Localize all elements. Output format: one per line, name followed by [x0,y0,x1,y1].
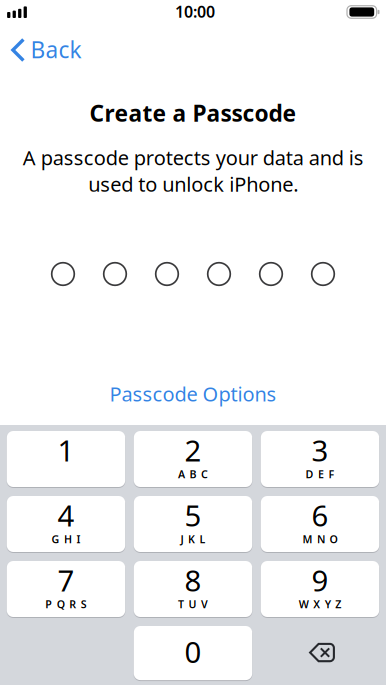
staticText: 4 [57,495,74,534]
staticText: MNO [302,532,337,546]
staticText: 0 [184,632,201,671]
button[interactable]: 4 [7,496,125,552]
staticText: DEF [305,467,334,481]
staticText: GHI [51,532,80,546]
button[interactable]: 9 [261,561,379,617]
staticText: 3 [311,430,328,469]
staticText: TUV [178,597,208,611]
button[interactable]: Delete [261,626,379,680]
button[interactable]: 0 [134,626,252,680]
staticText: 9 [311,560,328,599]
staticText: JKL [180,532,205,546]
staticText: 8 [184,560,201,599]
button[interactable]: 1 [7,431,125,487]
staticText: 5 [184,495,201,534]
button[interactable]: 6 [261,496,379,552]
staticText: Passcode Options [109,380,276,407]
staticText: Back [30,34,81,64]
button[interactable]: 7 [7,561,125,617]
staticText: WXYZ [299,597,341,611]
button[interactable]: 3 [261,431,379,487]
staticText: 10:00 [175,1,215,22]
staticText: ABC [178,467,208,481]
button[interactable]: 5 [134,496,252,552]
staticText: A passcode protects your data and is use… [22,144,363,197]
staticText: 1 [57,430,74,469]
staticText: 6 [311,495,328,534]
button[interactable]: 8 [134,561,252,617]
staticText: 7 [57,560,74,599]
staticText: PQRS [45,597,87,611]
staticText: 2 [184,430,201,469]
staticText: Create a Passcode [89,98,296,128]
button[interactable]: 2 [134,431,252,487]
button[interactable]: Back [0,23,89,69]
button[interactable]: Passcode Options [97,374,288,413]
